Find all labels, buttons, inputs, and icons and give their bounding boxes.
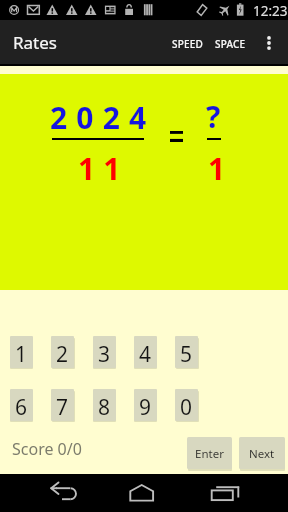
staticText: 12:23: [253, 2, 288, 20]
staticText: 9: [139, 393, 152, 421]
staticText: 0: [180, 393, 193, 421]
button[interactable]: Recent apps: [205, 474, 245, 512]
button[interactable]: 6: [10, 389, 33, 421]
button[interactable]: Next: [239, 437, 285, 469]
staticText: 3: [98, 340, 111, 368]
staticText: 8: [98, 393, 111, 421]
staticText: Next: [249, 446, 275, 462]
staticText: 5: [180, 340, 193, 368]
button[interactable]: 2: [51, 336, 74, 368]
staticText: Enter: [195, 446, 224, 462]
button[interactable]: SPACE: [209, 20, 252, 65]
staticText: 7: [56, 393, 69, 421]
staticText: 6: [15, 393, 28, 421]
staticText: 4: [139, 340, 152, 368]
button[interactable]: 3: [93, 336, 116, 368]
staticText: SPACE: [215, 37, 246, 51]
button[interactable]: SPEED: [168, 20, 208, 65]
button[interactable]: 5: [175, 336, 198, 368]
staticText: SPEED: [172, 37, 204, 51]
staticText: Score 0/0: [12, 438, 82, 460]
staticText: 1: [208, 148, 226, 189]
button[interactable]: Back: [44, 474, 84, 512]
staticText: 2 0 2 4: [50, 97, 147, 138]
staticText: ?: [206, 96, 221, 137]
button[interactable]: 4: [134, 336, 157, 368]
button[interactable]: More options: [256, 26, 282, 60]
button[interactable]: 7: [51, 389, 74, 421]
staticText: 2: [56, 340, 69, 368]
staticText: 1: [15, 340, 28, 368]
button[interactable]: Home: [124, 474, 166, 512]
button[interactable]: 0: [175, 389, 198, 421]
staticText: 1 1: [78, 148, 121, 189]
button[interactable]: Enter: [187, 437, 232, 469]
staticText: Rates: [13, 31, 57, 54]
button[interactable]: 8: [93, 389, 116, 421]
button[interactable]: 1: [10, 336, 33, 368]
button[interactable]: 9: [134, 389, 157, 421]
